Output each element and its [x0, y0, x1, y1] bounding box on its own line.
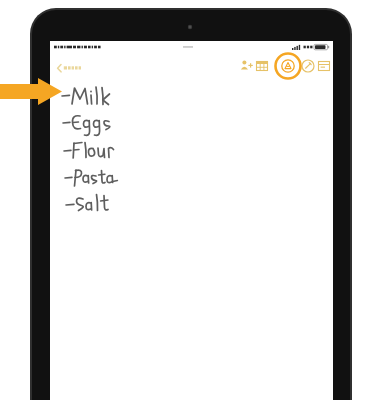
button[interactable]: Share: [317, 54, 333, 78]
button[interactable]: Insert table: [255, 54, 272, 78]
button[interactable]: Handwritten shopping list: Milk, Eggs, F…: [52, 82, 312, 222]
button[interactable]: New note: [301, 54, 317, 78]
button[interactable]: Markup tools: [276, 54, 301, 79]
button[interactable]: Back to Notes: [57, 57, 109, 75]
button[interactable]: Add collaborator: [238, 54, 255, 78]
